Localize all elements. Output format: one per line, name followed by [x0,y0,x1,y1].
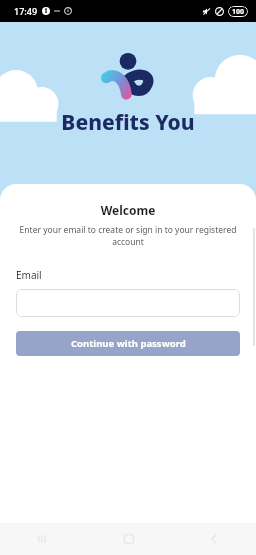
staticText: Enter your email to create or sign in to… [16,224,240,248]
button[interactable]: Continue with password [16,331,240,356]
staticText: 17:49 [14,5,38,17]
staticText: Welcome [16,202,240,218]
staticText: 100 [232,7,245,17]
staticText: Continue with password [71,337,186,350]
staticText: Benefits You [0,108,256,137]
button[interactable] [16,289,240,317]
staticText: Email [16,268,42,282]
